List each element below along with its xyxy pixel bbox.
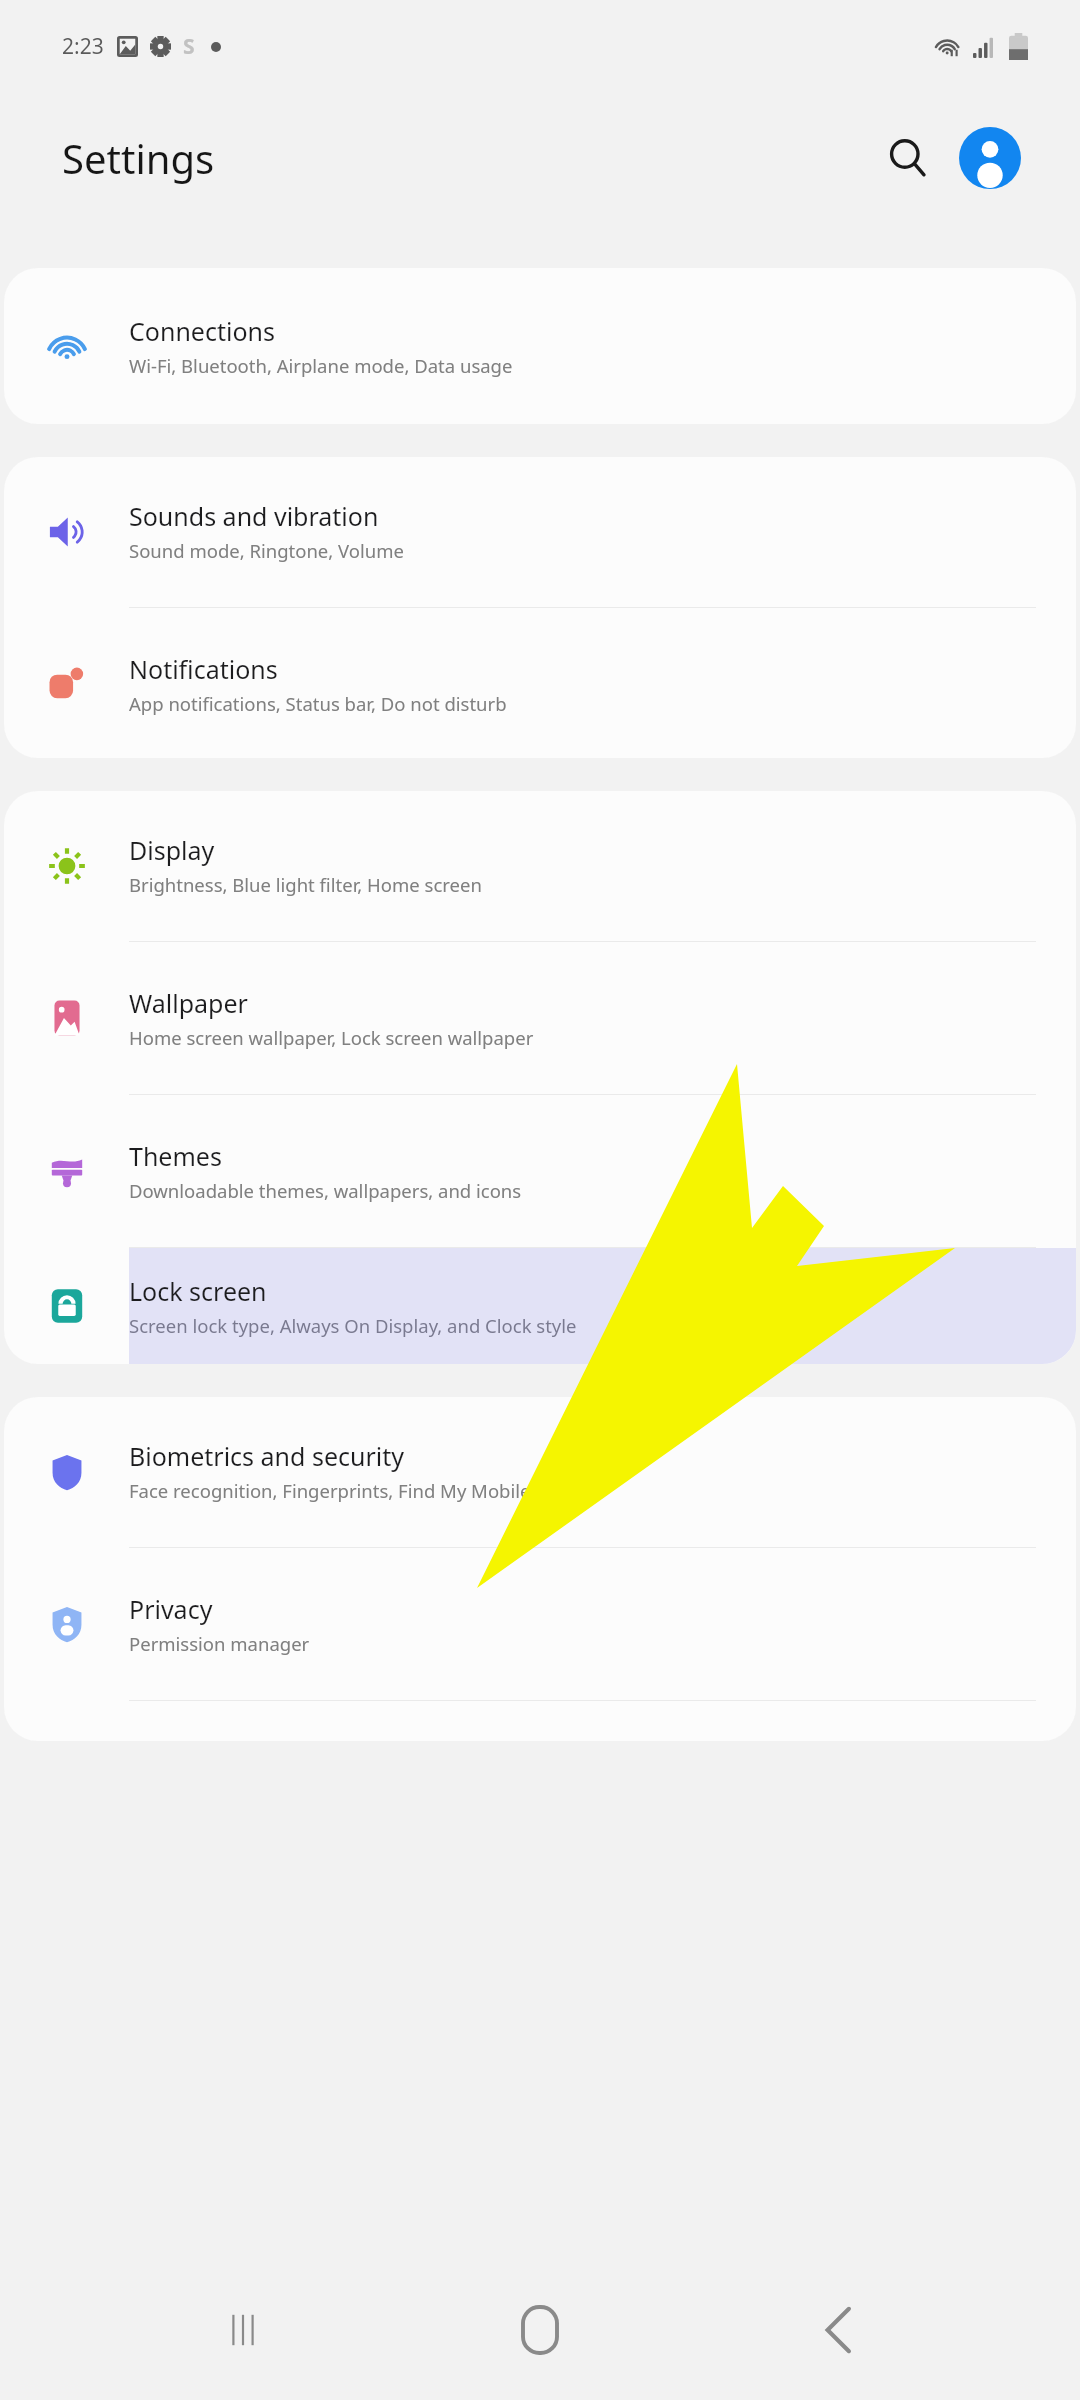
staticText: Face recognition, Fingerprints, Find My … [129,1478,531,1503]
button[interactable]: Biometrics and security [4,1397,1076,1547]
staticText: Brightness, Blue light filter, Home scre… [129,872,482,897]
staticText: Screen lock type, Always On Display, and… [129,1313,577,1338]
staticText: App notifications, Status bar, Do not di… [129,691,507,716]
staticText: Themes [129,1139,222,1173]
staticText: Notifications [129,652,278,686]
staticText: S [183,32,195,61]
staticText: Wi-Fi, Bluetooth, Airplane mode, Data us… [129,353,513,378]
staticText: Lock screen [129,1274,267,1308]
staticText: Settings [62,131,215,185]
staticText: Connections [129,314,275,348]
staticText: Sounds and vibration [129,499,379,533]
button[interactable]: Wallpaper [4,942,1076,1094]
button[interactable]: Sounds and vibration [4,457,1076,607]
staticText: Sound mode, Ringtone, Volume [129,538,404,563]
staticText: Home screen wallpaper, Lock screen wallp… [129,1025,534,1050]
staticText: 2:23 [62,32,104,61]
button[interactable]: Notifications [4,608,1076,758]
button[interactable]: Recents [188,2275,298,2385]
staticText: Biometrics and security [129,1439,405,1473]
staticText: Permission manager [129,1631,310,1656]
button[interactable]: Themes [4,1095,1076,1247]
staticText: Downloadable themes, wallpapers, and ico… [129,1178,522,1203]
button[interactable]: Back [783,2275,893,2385]
staticText: Display [129,833,215,867]
button[interactable]: Account [952,120,1028,196]
button[interactable]: Lock screen [4,1248,1076,1364]
button[interactable]: Privacy [4,1548,1076,1700]
staticText: Privacy [129,1592,213,1626]
button[interactable]: Connections [4,268,1076,424]
staticText: Wallpaper [129,986,248,1020]
button[interactable]: Display [4,791,1076,941]
button[interactable]: Search [872,122,944,194]
button[interactable]: Home [485,2275,595,2385]
